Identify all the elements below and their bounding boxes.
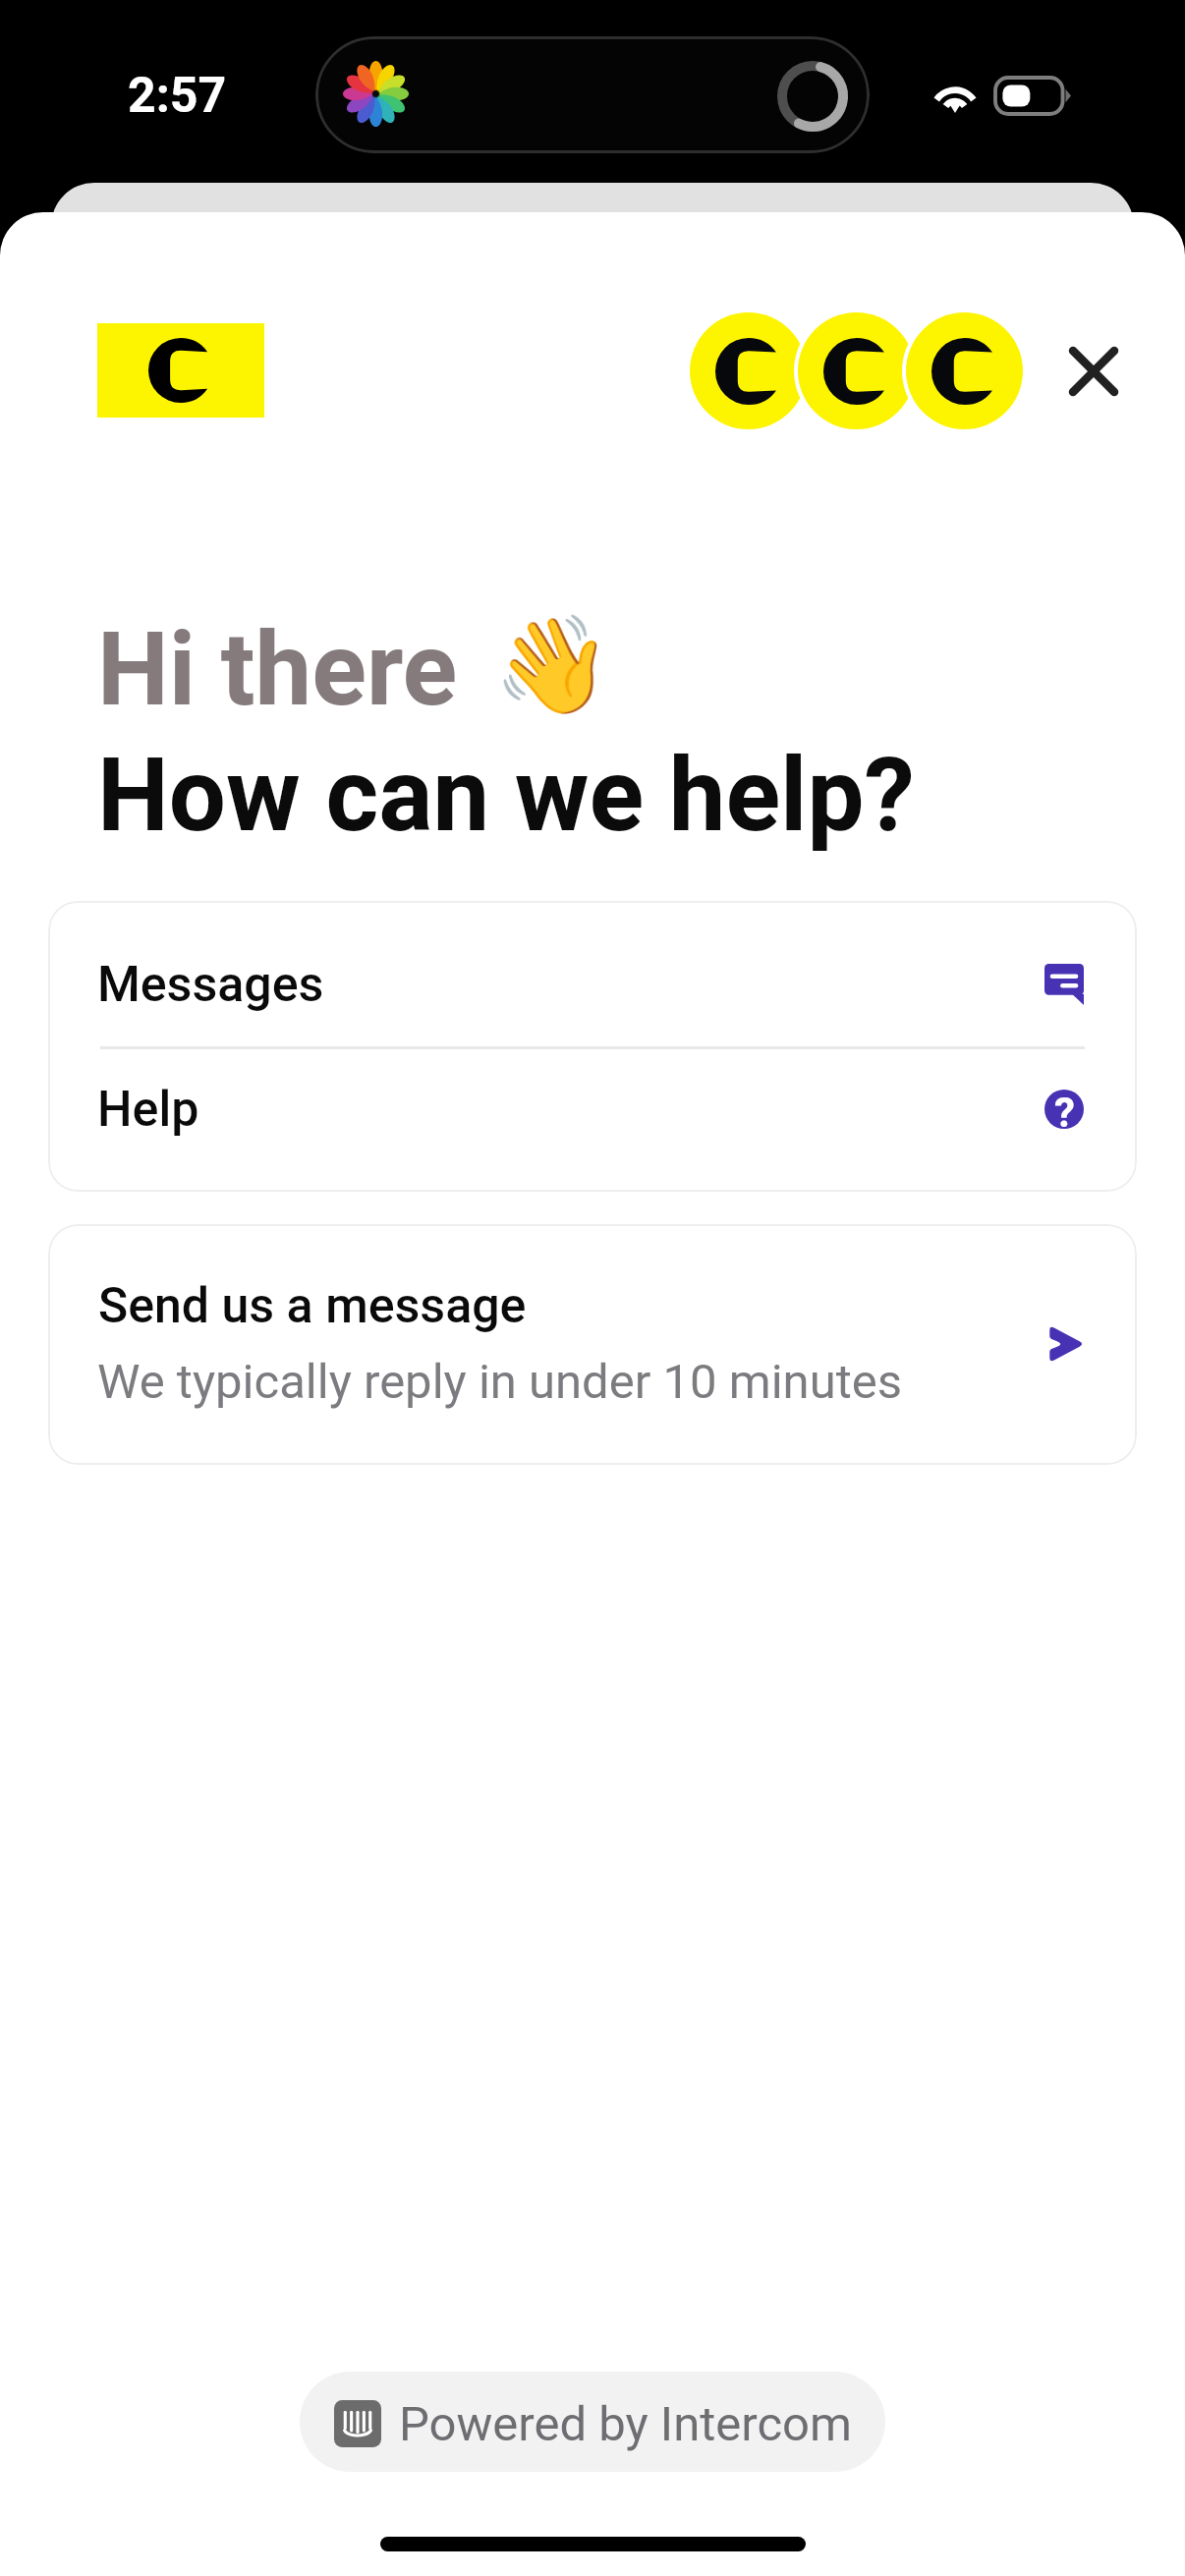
button[interactable]: Help <box>48 1046 1137 1192</box>
button[interactable]: Company logo <box>97 323 264 418</box>
staticText: Hi there <box>97 610 482 729</box>
staticText: Messages <box>97 956 324 1014</box>
staticText: Powered by Intercom <box>399 2396 852 2452</box>
staticText: 👋 <box>493 609 613 721</box>
staticText: How can we help? <box>97 736 915 855</box>
staticText: Send us a message <box>98 1277 527 1335</box>
button[interactable]: Send us a message <box>48 1224 1137 1465</box>
button[interactable]: Team member 2 <box>794 308 919 433</box>
staticText: 2:57 <box>128 67 227 125</box>
staticText: ? <box>1054 1089 1075 1128</box>
button[interactable]: Close <box>1047 325 1140 418</box>
button[interactable]: Team member 3 <box>902 308 1027 433</box>
button[interactable]: Messages <box>48 901 1137 1046</box>
staticText: Help <box>97 1081 199 1139</box>
staticText: We typically reply in under 10 minutes <box>97 1354 902 1410</box>
button[interactable]: Team member 1 <box>686 308 811 433</box>
button[interactable]: Powered by Intercom <box>300 2372 885 2472</box>
